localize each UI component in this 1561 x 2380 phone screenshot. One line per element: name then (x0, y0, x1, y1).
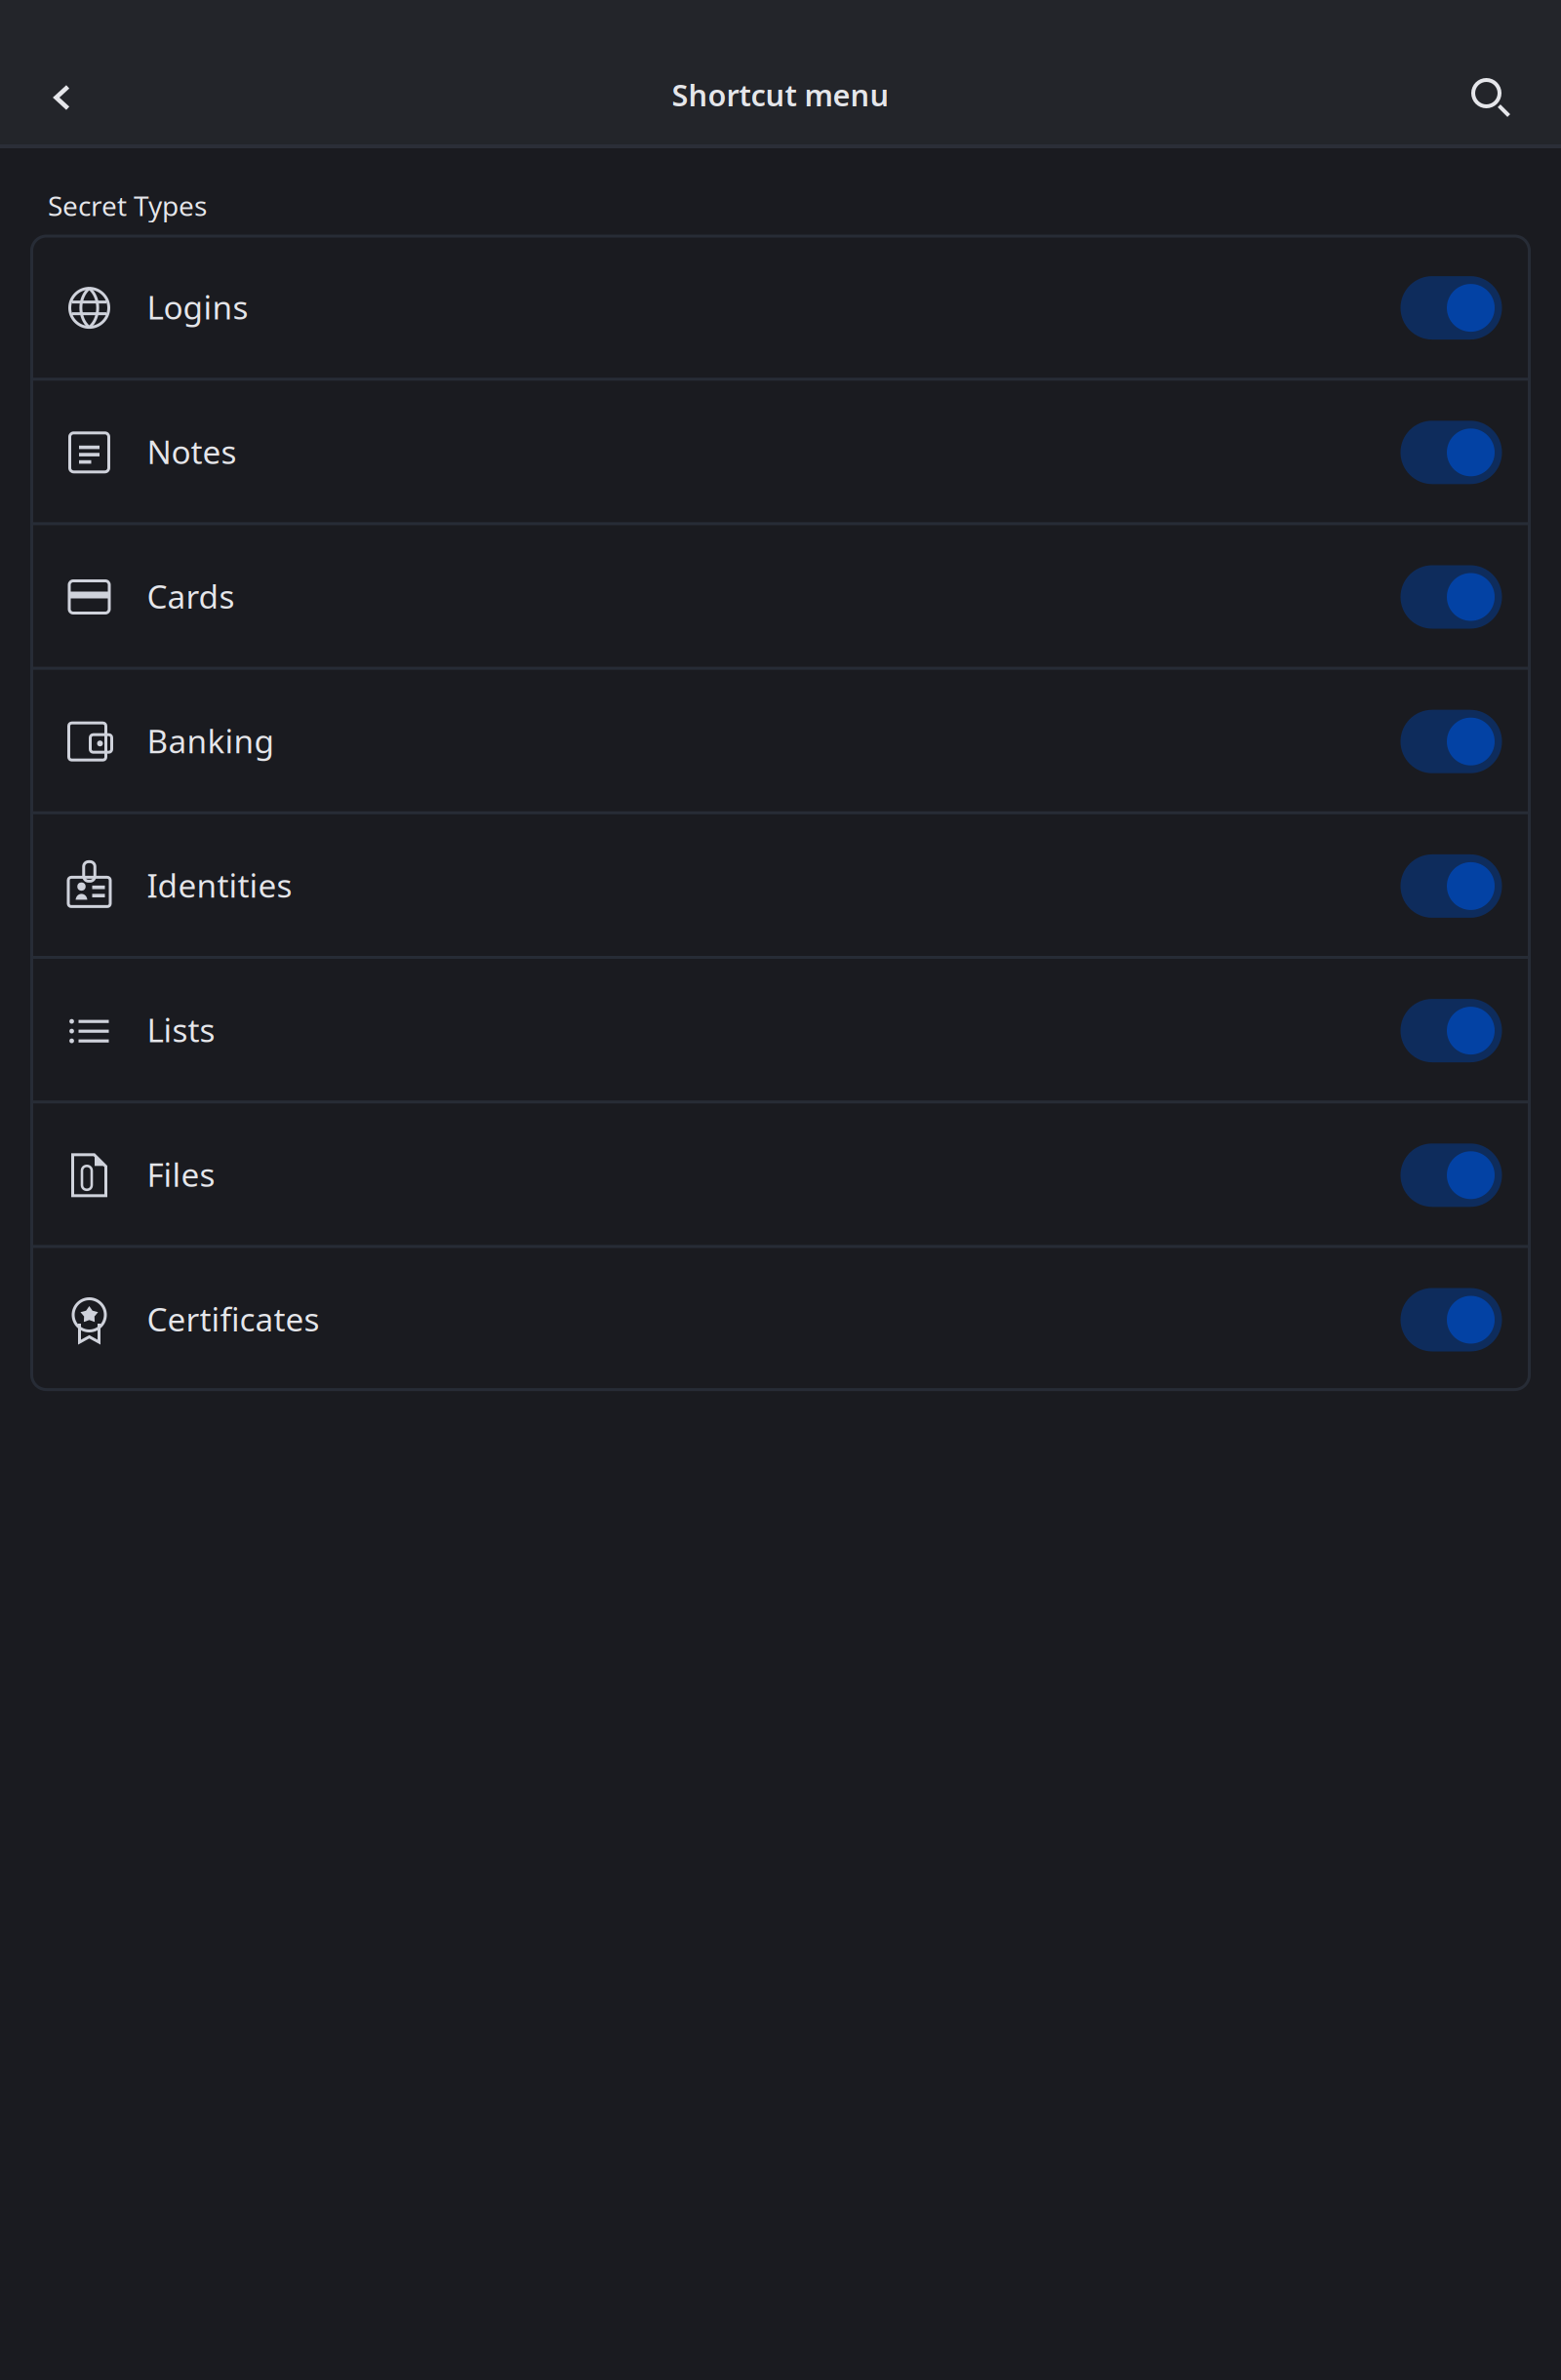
button[interactable]: Banking (32, 670, 1529, 811)
button[interactable]: Cards (32, 525, 1529, 667)
button[interactable]: Notes (32, 381, 1529, 522)
button[interactable]: Back (0, 51, 105, 139)
button[interactable]: Files (32, 1103, 1529, 1245)
button[interactable]: Lists (32, 959, 1529, 1100)
staticText: Logins (147, 285, 248, 329)
staticText: Notes (147, 430, 237, 473)
button[interactable]: Search (1444, 51, 1561, 139)
staticText: Identities (147, 864, 292, 907)
button[interactable]: Certificates (32, 1248, 1529, 1390)
staticText: Banking (147, 719, 275, 762)
staticText: Cards (147, 574, 235, 618)
button[interactable]: Identities (32, 814, 1529, 956)
staticText: Files (147, 1153, 215, 1196)
staticText: Secret Types (48, 187, 207, 224)
staticText: Certificates (147, 1297, 320, 1340)
staticText: Shortcut menu (672, 75, 889, 114)
staticText: Lists (147, 1008, 215, 1051)
button[interactable]: Logins (32, 236, 1529, 378)
